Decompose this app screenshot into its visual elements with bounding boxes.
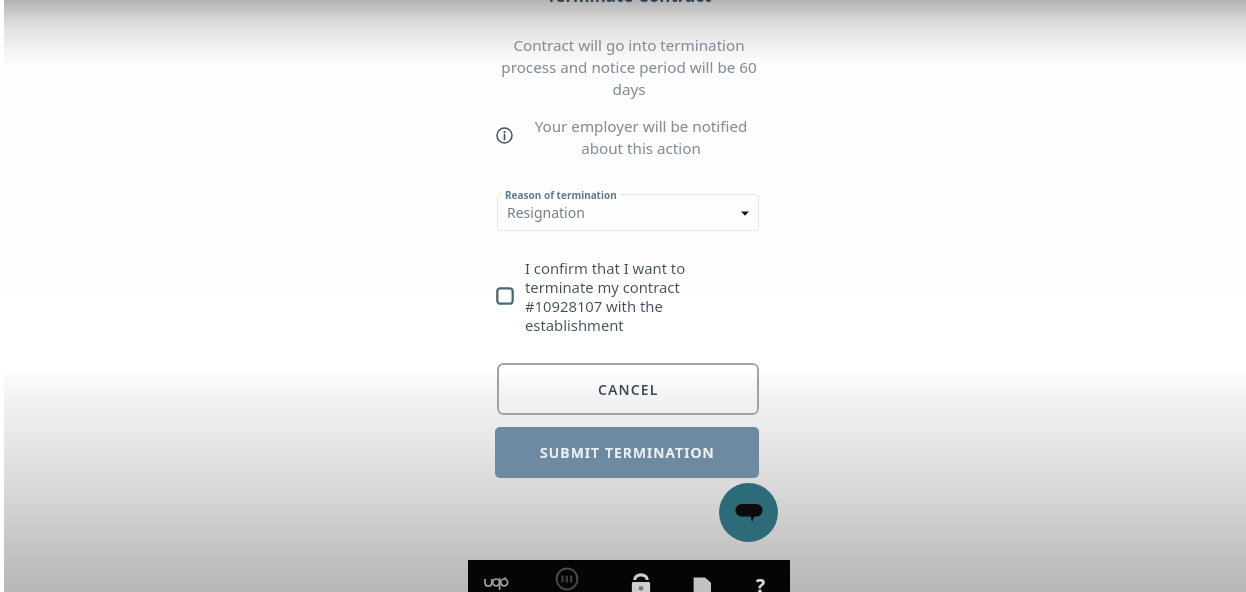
- button[interactable]: Home: [479, 560, 511, 592]
- staticText: Your employer will be notified about thi…: [527, 116, 755, 158]
- staticText: Reason of termination: [505, 188, 617, 202]
- staticText: I confirm that I want to terminate my co…: [525, 258, 703, 335]
- button[interactable]: Help: [745, 560, 777, 592]
- staticText: Contract will go into termination proces…: [492, 35, 766, 99]
- staticText: CANCEL: [598, 380, 659, 399]
- staticText: SUBMIT TERMINATION: [540, 443, 715, 462]
- button[interactable]: Resignation: [497, 194, 759, 231]
- staticText: ?: [756, 573, 766, 592]
- button[interactable]: Chat support: [719, 483, 778, 542]
- button[interactable]: Documents: [686, 560, 718, 592]
- button[interactable]: Security: [625, 560, 657, 592]
- staticText: Terminate Contract: [498, 0, 760, 7]
- button[interactable]: Account: [551, 560, 583, 592]
- button[interactable]: SUBMIT TERMINATION: [495, 427, 759, 478]
- button[interactable]: CANCEL: [497, 363, 759, 415]
- staticText: Resignation: [507, 203, 585, 222]
